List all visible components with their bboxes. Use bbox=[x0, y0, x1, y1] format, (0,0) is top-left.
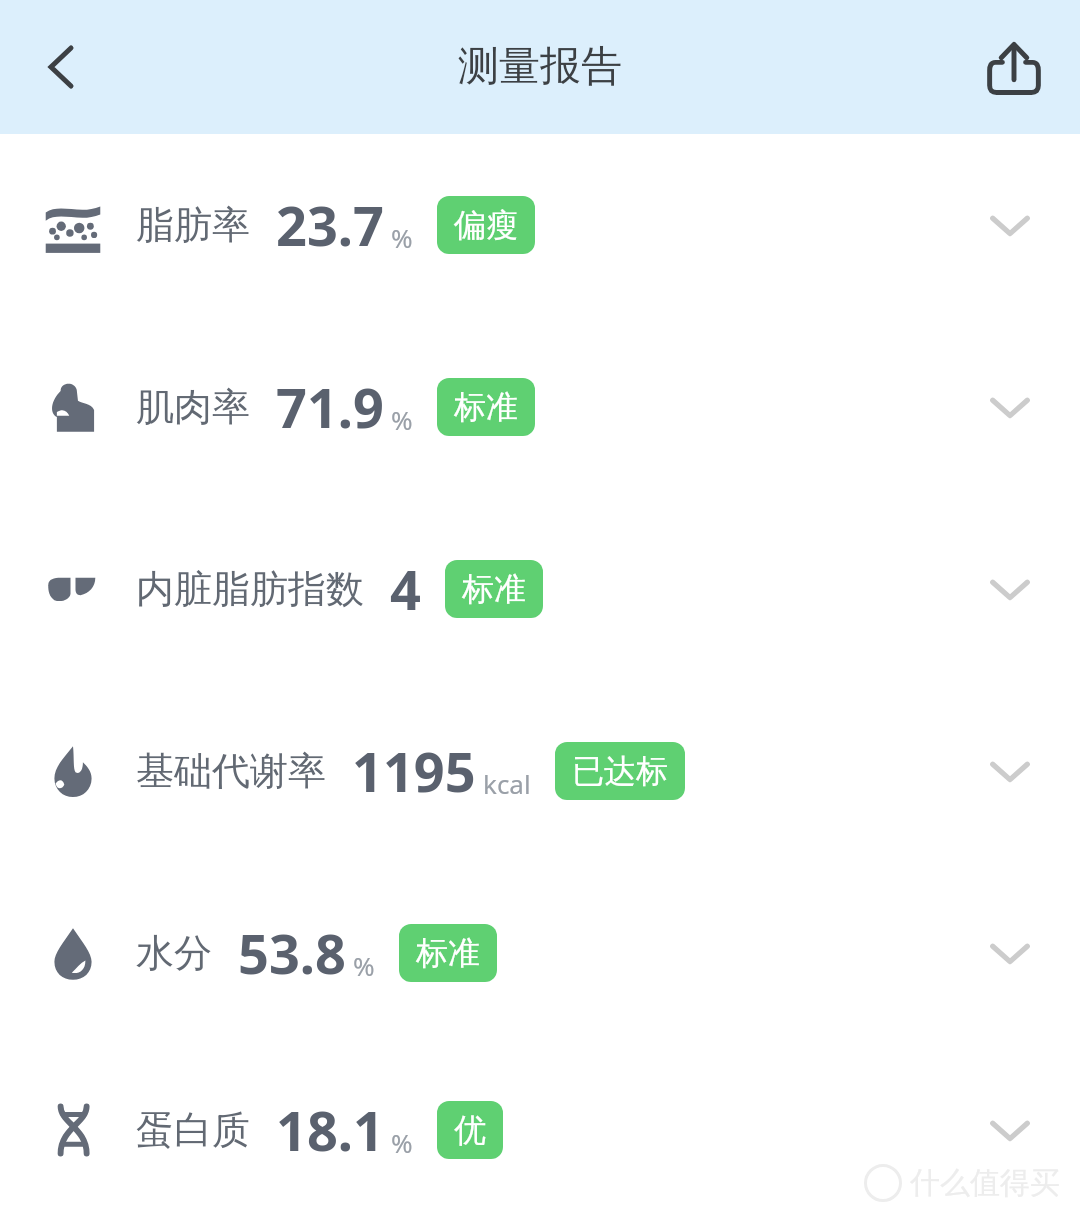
button[interactable]: Expand bbox=[970, 1090, 1050, 1170]
staticText: 水分 bbox=[136, 929, 212, 977]
button[interactable]: Share bbox=[966, 19, 1062, 115]
button[interactable]: Expand bbox=[970, 367, 1050, 447]
staticText: 偏瘦 bbox=[454, 205, 518, 245]
staticText: % bbox=[391, 402, 413, 437]
button[interactable]: 水分 bbox=[0, 862, 1080, 1044]
staticText: 肌肉率 bbox=[136, 383, 250, 431]
staticText: 标准 bbox=[416, 933, 480, 973]
staticText: 23.7 bbox=[276, 188, 384, 262]
button[interactable]: 基础代谢率 bbox=[0, 680, 1080, 862]
staticText: % bbox=[353, 948, 375, 983]
button[interactable]: 脂肪率 bbox=[0, 134, 1080, 316]
staticText: 优 bbox=[454, 1110, 486, 1150]
button[interactable]: 蛋白质 bbox=[0, 1044, 1080, 1216]
staticText: 已达标 bbox=[572, 751, 668, 791]
staticText: % bbox=[391, 220, 413, 255]
staticText: 标准 bbox=[454, 387, 518, 427]
staticText: 53.8 bbox=[238, 916, 346, 990]
staticText: 18.1 bbox=[276, 1093, 384, 1167]
staticText: 内脏脂肪指数 bbox=[136, 565, 364, 613]
staticText: % bbox=[391, 1125, 413, 1160]
staticText: 基础代谢率 bbox=[136, 747, 326, 795]
button[interactable]: 肌肉率 bbox=[0, 316, 1080, 498]
staticText: 标准 bbox=[462, 569, 526, 609]
button[interactable]: Back bbox=[14, 19, 110, 115]
staticText: 71.9 bbox=[276, 370, 384, 444]
staticText: 蛋白质 bbox=[136, 1106, 250, 1154]
button[interactable]: Expand bbox=[970, 549, 1050, 629]
staticText: kcal bbox=[483, 766, 531, 801]
staticText: 脂肪率 bbox=[136, 201, 250, 249]
button[interactable]: 内脏脂肪指数 bbox=[0, 498, 1080, 680]
button[interactable]: Expand bbox=[970, 731, 1050, 811]
staticText: 4 bbox=[390, 552, 421, 626]
button[interactable]: Expand bbox=[970, 913, 1050, 993]
staticText: 1195 bbox=[352, 734, 476, 808]
button[interactable]: Expand bbox=[970, 185, 1050, 265]
staticText: 什么值得买 bbox=[910, 1164, 1060, 1202]
staticText: 测量报告 bbox=[458, 41, 622, 93]
